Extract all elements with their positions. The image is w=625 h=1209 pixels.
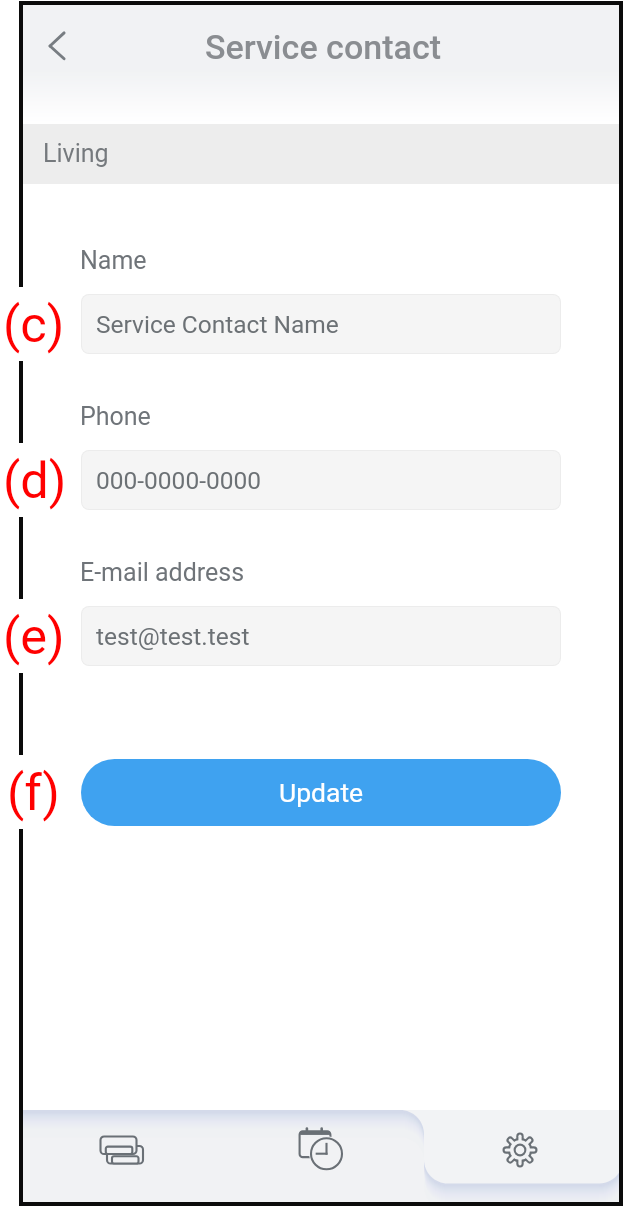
button[interactable]: Back [32, 19, 86, 73]
button[interactable]: Update [81, 759, 561, 826]
button[interactable]: Service Contact Name [82, 295, 560, 353]
staticText: Service Contact Name [96, 310, 339, 339]
staticText: (d) [3, 451, 63, 510]
button[interactable]: Schedule [221, 1110, 420, 1202]
staticText: Phone [80, 402, 151, 431]
button[interactable]: 000-0000-0000 [82, 451, 560, 509]
staticText: (c) [3, 295, 63, 354]
staticText: Living [43, 139, 109, 168]
staticText: Name [80, 246, 147, 275]
staticText: Service contact [205, 27, 442, 67]
staticText: Update [279, 777, 364, 808]
staticText: E-mail address [80, 558, 245, 587]
staticText: (f) [7, 763, 60, 822]
button[interactable]: test@test.test [82, 607, 560, 665]
button[interactable]: Print [23, 1110, 221, 1202]
staticText: test@test.test [96, 622, 250, 651]
button[interactable]: Settings [420, 1110, 619, 1202]
staticText: (e) [3, 607, 63, 666]
staticText: 000-0000-0000 [96, 466, 262, 495]
